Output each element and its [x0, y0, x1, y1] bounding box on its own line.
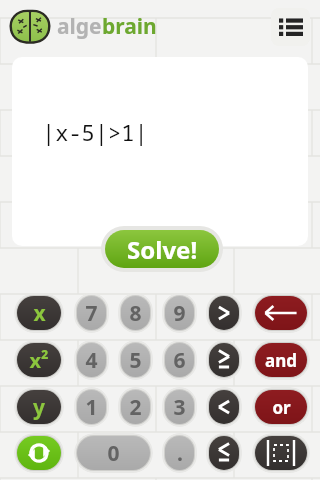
button[interactable]: Swap — [14, 433, 64, 473]
button[interactable]: Greater than — [206, 293, 242, 333]
button[interactable]: 2 — [118, 387, 153, 427]
button[interactable]: and — [252, 340, 310, 380]
button[interactable]: Menu — [271, 8, 310, 46]
staticText: 4 — [85, 346, 98, 375]
button[interactable]: 5 — [118, 340, 153, 380]
button[interactable]: |x-5|>1| — [12, 57, 308, 246]
button[interactable]: 3 — [162, 387, 197, 427]
button[interactable]: Absolute value — [252, 433, 310, 473]
staticText: 9 — [173, 299, 186, 328]
staticText: Solve! — [127, 233, 198, 266]
staticText: y — [33, 393, 45, 422]
button[interactable]: 9 — [162, 293, 197, 333]
staticText: |x-5|>1| — [42, 117, 148, 147]
button[interactable]: Greater than or equal — [206, 340, 242, 380]
button[interactable]: . — [162, 433, 197, 473]
button[interactable]: Less than or equal — [206, 433, 242, 473]
button[interactable]: y — [14, 387, 64, 427]
staticText: 8 — [129, 299, 142, 328]
staticText: 1 — [85, 393, 98, 422]
button[interactable]: x² — [14, 340, 64, 380]
staticText: 5 — [129, 346, 142, 375]
button[interactable]: or — [252, 387, 310, 427]
staticText: 7 — [85, 299, 98, 328]
staticText: 6 — [173, 346, 186, 375]
staticText: 0 — [107, 439, 120, 468]
staticText: 2 — [129, 393, 142, 422]
button[interactable]: Solve! — [101, 226, 223, 272]
staticText: 3 — [173, 393, 186, 422]
button[interactable]: 7 — [74, 293, 109, 333]
button[interactable]: 1 — [74, 387, 109, 427]
staticText: or — [272, 396, 291, 419]
staticText: . — [177, 439, 183, 468]
staticText: brain — [102, 12, 157, 41]
button[interactable]: 8 — [118, 293, 153, 333]
button[interactable]: 4 — [74, 340, 109, 380]
button[interactable]: x — [14, 293, 64, 333]
button[interactable]: 6 — [162, 340, 197, 380]
button[interactable]: Backspace — [252, 293, 310, 333]
staticText: x — [33, 299, 46, 328]
staticText: x² — [29, 347, 49, 374]
button[interactable]: Less than — [206, 387, 242, 427]
staticText: alge — [57, 12, 102, 41]
staticText: and — [265, 349, 297, 372]
button[interactable]: 0 — [74, 433, 153, 473]
